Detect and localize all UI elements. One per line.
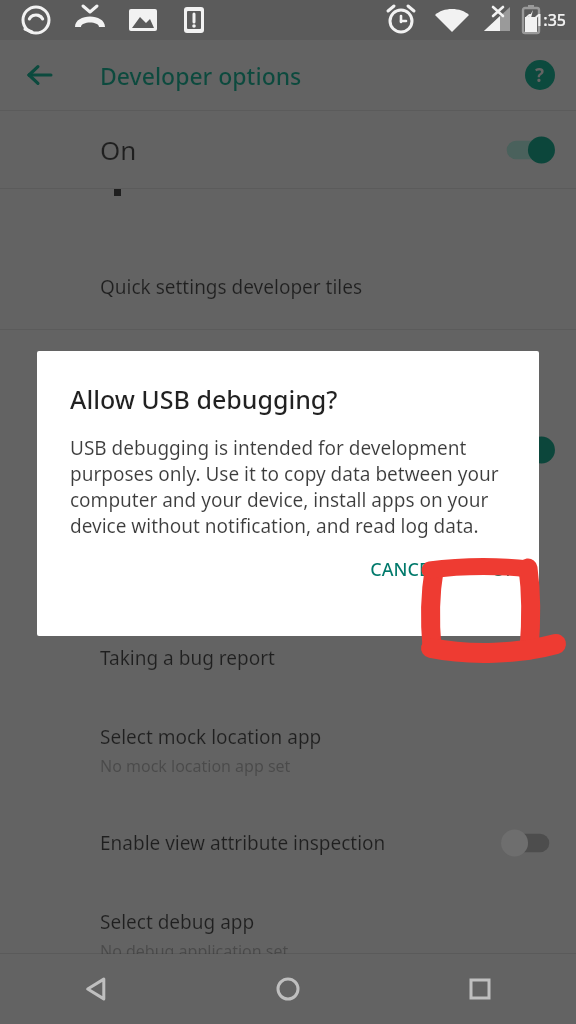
button[interactable]: Back bbox=[16, 51, 64, 99]
button[interactable]: Back bbox=[0, 954, 192, 1024]
button[interactable]: Developer options toggle bbox=[496, 128, 560, 172]
staticText: Quick settings developer tiles bbox=[100, 274, 363, 300]
button[interactable]: USB debugging toggle bbox=[496, 428, 560, 472]
button[interactable]: Enable view attribute inspection toggle bbox=[496, 821, 560, 865]
staticText: ? bbox=[535, 62, 545, 88]
staticText: Select mock location app bbox=[100, 724, 322, 750]
staticText: OK bbox=[491, 557, 517, 582]
staticText: No debug application set bbox=[100, 940, 289, 962]
staticText: No mock location app set bbox=[100, 755, 291, 777]
button[interactable]: Select debug app bbox=[0, 890, 576, 980]
staticText: On bbox=[100, 132, 137, 167]
staticText: USB debugging is intended for developmen… bbox=[70, 435, 517, 539]
button[interactable]: Select mock location app bbox=[0, 705, 576, 795]
staticText: Debugging bbox=[100, 383, 185, 405]
button[interactable]: Home bbox=[192, 954, 384, 1024]
staticText: CANCEL bbox=[370, 557, 439, 582]
staticText: Allow USB debugging? bbox=[70, 382, 338, 416]
button[interactable]: OK bbox=[477, 549, 531, 590]
staticText: 11:35 bbox=[525, 9, 566, 31]
staticText: Taking a bug report bbox=[100, 645, 275, 671]
button[interactable]: Recents bbox=[384, 954, 576, 1024]
staticText: Select debug app bbox=[100, 909, 255, 935]
staticText: Enable view attribute inspection bbox=[100, 830, 386, 856]
button[interactable]: Help bbox=[518, 53, 562, 97]
staticText: Developer options bbox=[100, 60, 302, 91]
button[interactable]: CANCEL bbox=[356, 549, 453, 590]
